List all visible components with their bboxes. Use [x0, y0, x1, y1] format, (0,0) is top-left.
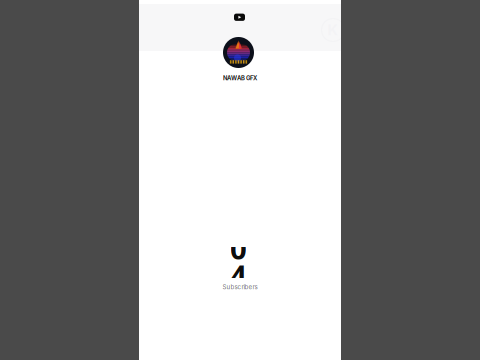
staticText: NAWAB GFX [223, 74, 257, 82]
staticText: Subscribers [222, 283, 257, 291]
button[interactable]: YouTube [234, 14, 245, 21]
staticText: 4 [230, 255, 247, 294]
button[interactable]: NAWAB GFX channel [223, 37, 254, 68]
button[interactable]: NAWAB GFX [139, 74, 341, 82]
staticText: 0 [230, 228, 247, 267]
